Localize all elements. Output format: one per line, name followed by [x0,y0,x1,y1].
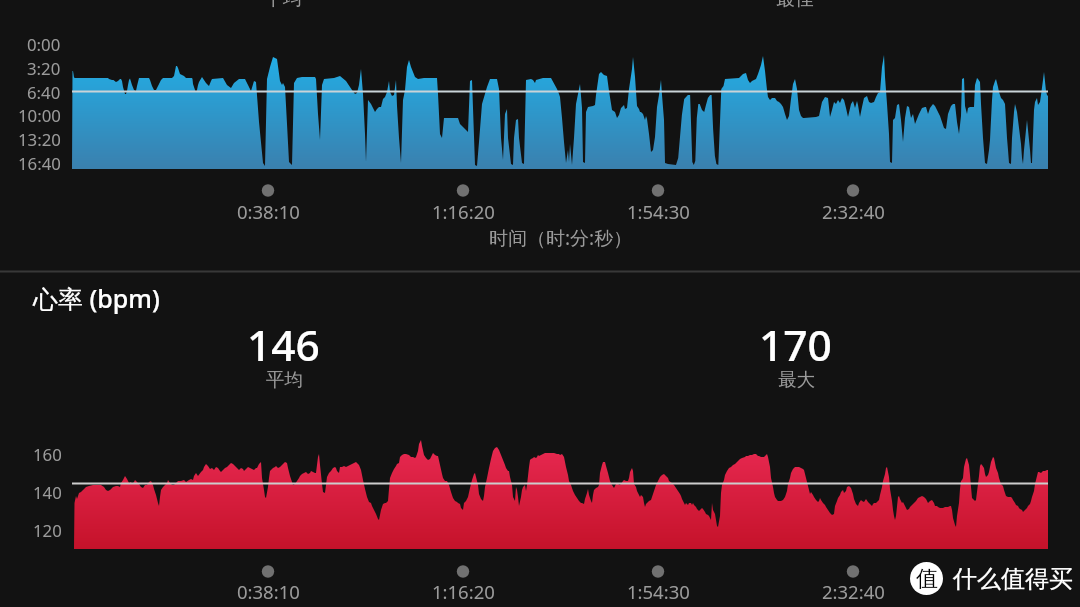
staticText: 心率 (bpm) [33,281,160,315]
staticText: 10:00 [18,104,61,127]
button[interactable]: Heart rate chart [0,272,1080,607]
staticText: 120 [33,519,62,542]
staticText: 146 [247,316,320,374]
staticText: 平均 [266,368,303,391]
staticText: 什么值得买 [953,564,1073,594]
staticText: 140 [33,481,62,504]
button[interactable]: Smzdm watermark [910,562,1063,595]
staticText: 时间（时:分:秒） [489,225,633,251]
staticText: 0:00 [27,33,61,56]
staticText: 1:16:20 [432,579,495,604]
staticText: 1:54:30 [627,579,690,604]
staticText: 6:40 [27,81,61,104]
staticText: 1:16:20 [432,199,495,224]
staticText: 2:32:40 [822,579,885,604]
staticText: 最大 [778,368,815,391]
staticText: 最佳 [776,0,814,11]
staticText: 值 [916,565,938,593]
staticText: 平均 [264,0,302,11]
staticText: 16:40 [18,152,61,175]
staticText: 13:20 [18,128,61,151]
staticText: 160 [33,443,62,466]
staticText: 0:38:10 [237,199,300,224]
staticText: 170 [759,316,832,374]
button[interactable]: Pace chart [0,0,1080,270]
staticText: 2:32:40 [822,199,885,224]
staticText: 3:20 [27,57,61,80]
staticText: 1:54:30 [627,199,690,224]
staticText: 0:38:10 [237,579,300,604]
